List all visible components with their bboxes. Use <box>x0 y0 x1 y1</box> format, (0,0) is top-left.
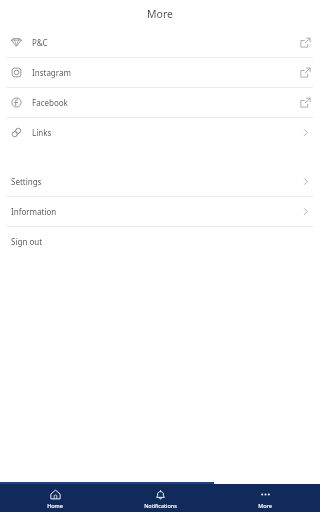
button[interactable]: Notifications <box>110 487 210 509</box>
staticText: Facebook <box>32 97 68 108</box>
staticText: Information <box>11 206 57 217</box>
other: Open <box>300 127 311 138</box>
button[interactable]: More <box>215 487 315 509</box>
button[interactable]: Information <box>0 197 320 226</box>
other: Open external link <box>300 97 311 108</box>
staticText: P&C <box>32 37 48 48</box>
button[interactable]: Home <box>5 487 105 509</box>
button[interactable]: Links <box>0 118 320 147</box>
other: Open <box>300 206 311 217</box>
button[interactable]: Facebook <box>0 88 320 117</box>
staticText: Home <box>47 502 63 509</box>
button[interactable]: Sign out <box>0 227 320 256</box>
staticText: Instagram <box>32 67 71 78</box>
staticText: More <box>147 7 173 21</box>
staticText: More <box>258 502 272 509</box>
other: Open external link <box>300 67 311 78</box>
staticText: Settings <box>11 176 42 187</box>
other: Open <box>300 176 311 187</box>
other: Open external link <box>300 37 311 48</box>
staticText: Links <box>32 127 52 138</box>
button[interactable]: P&C <box>0 28 320 57</box>
button[interactable]: Instagram <box>0 58 320 87</box>
staticText: Notifications <box>144 502 177 509</box>
button[interactable]: Settings <box>0 167 320 196</box>
staticText: Sign out <box>11 236 43 247</box>
